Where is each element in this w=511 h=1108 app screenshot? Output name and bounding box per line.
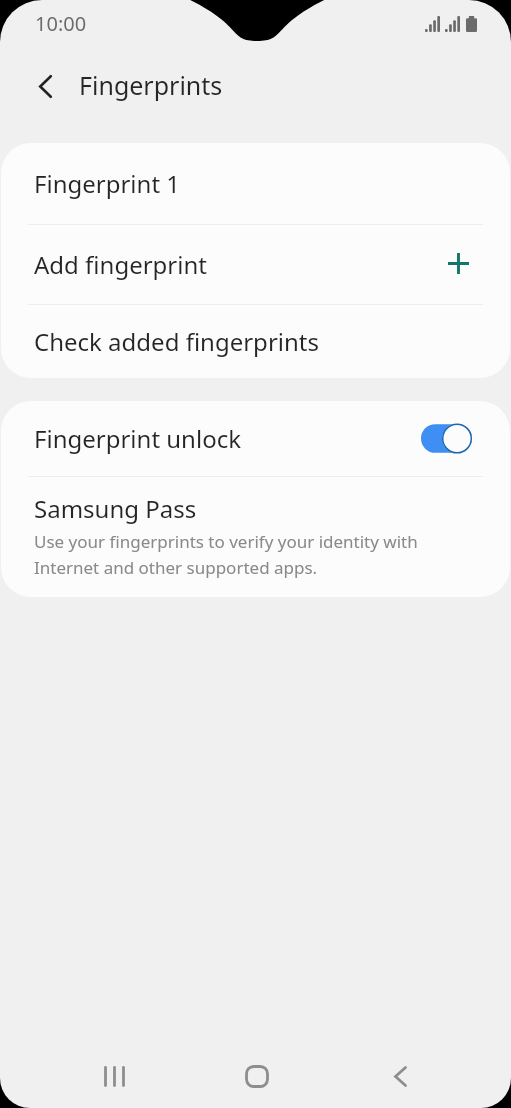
staticText: Fingerprint 1	[34, 167, 181, 200]
staticText: 10:00	[35, 10, 87, 37]
button[interactable]: Back	[353, 1045, 448, 1108]
button[interactable]: Fingerprint unlock	[1, 401, 510, 476]
staticText: Use your fingerprints to verify your ide…	[34, 530, 480, 579]
staticText: Samsung Pass	[34, 492, 197, 525]
staticText: Fingerprints	[79, 68, 223, 102]
button[interactable]: Fingerprint unlock	[421, 423, 472, 454]
button[interactable]: Fingerprint 1	[1, 143, 510, 224]
staticText: Add fingerprint	[34, 248, 444, 281]
button[interactable]: Home	[209, 1045, 304, 1108]
button[interactable]: Recent apps	[67, 1045, 162, 1108]
button[interactable]: Check added fingerprints	[1, 305, 510, 378]
staticText: Check added fingerprints	[34, 325, 319, 358]
button[interactable]: Navigate up	[22, 62, 68, 108]
staticText: Fingerprint unlock	[34, 422, 421, 455]
button[interactable]: Samsung Pass	[1, 477, 510, 597]
button[interactable]: Add fingerprint	[1, 225, 510, 304]
